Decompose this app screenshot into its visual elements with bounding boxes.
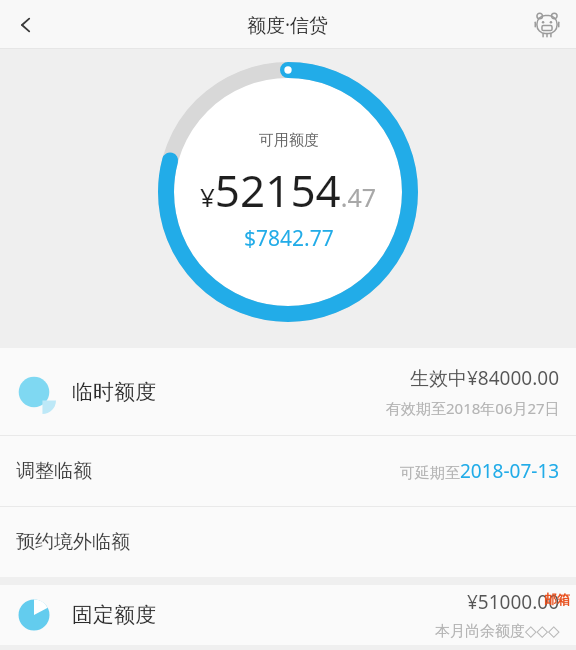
staticText: ¥52154.47 (200, 160, 377, 220)
staticText: 固定额度 (72, 602, 156, 628)
staticText: 可延期至2018-07-13 (400, 458, 560, 484)
button[interactable]: 固定额度 (0, 585, 576, 645)
staticText: 邮箱 (544, 591, 570, 607)
staticText: 可用额度 (259, 131, 319, 150)
button[interactable]: Assistant (530, 8, 564, 42)
staticText: ¥51000.00 (467, 589, 560, 615)
button[interactable]: 临时额度 (0, 348, 576, 435)
button[interactable]: Back (0, 0, 52, 49)
staticText: $7842.77 (244, 224, 334, 253)
staticText: 临时额度 (72, 379, 156, 405)
staticText: 预约境外临额 (16, 530, 130, 554)
button[interactable]: 调整临额 (0, 436, 576, 506)
staticText: 有效期至2018年06月27日 (386, 398, 560, 418)
staticText: 调整临额 (16, 459, 92, 483)
staticText: 本月尚余额度◇◇◇ (435, 622, 560, 641)
button[interactable]: 预约境外临额 (0, 507, 576, 577)
staticText: 额度·信贷 (247, 12, 329, 38)
staticText: 生效中¥84000.00 (410, 365, 560, 391)
